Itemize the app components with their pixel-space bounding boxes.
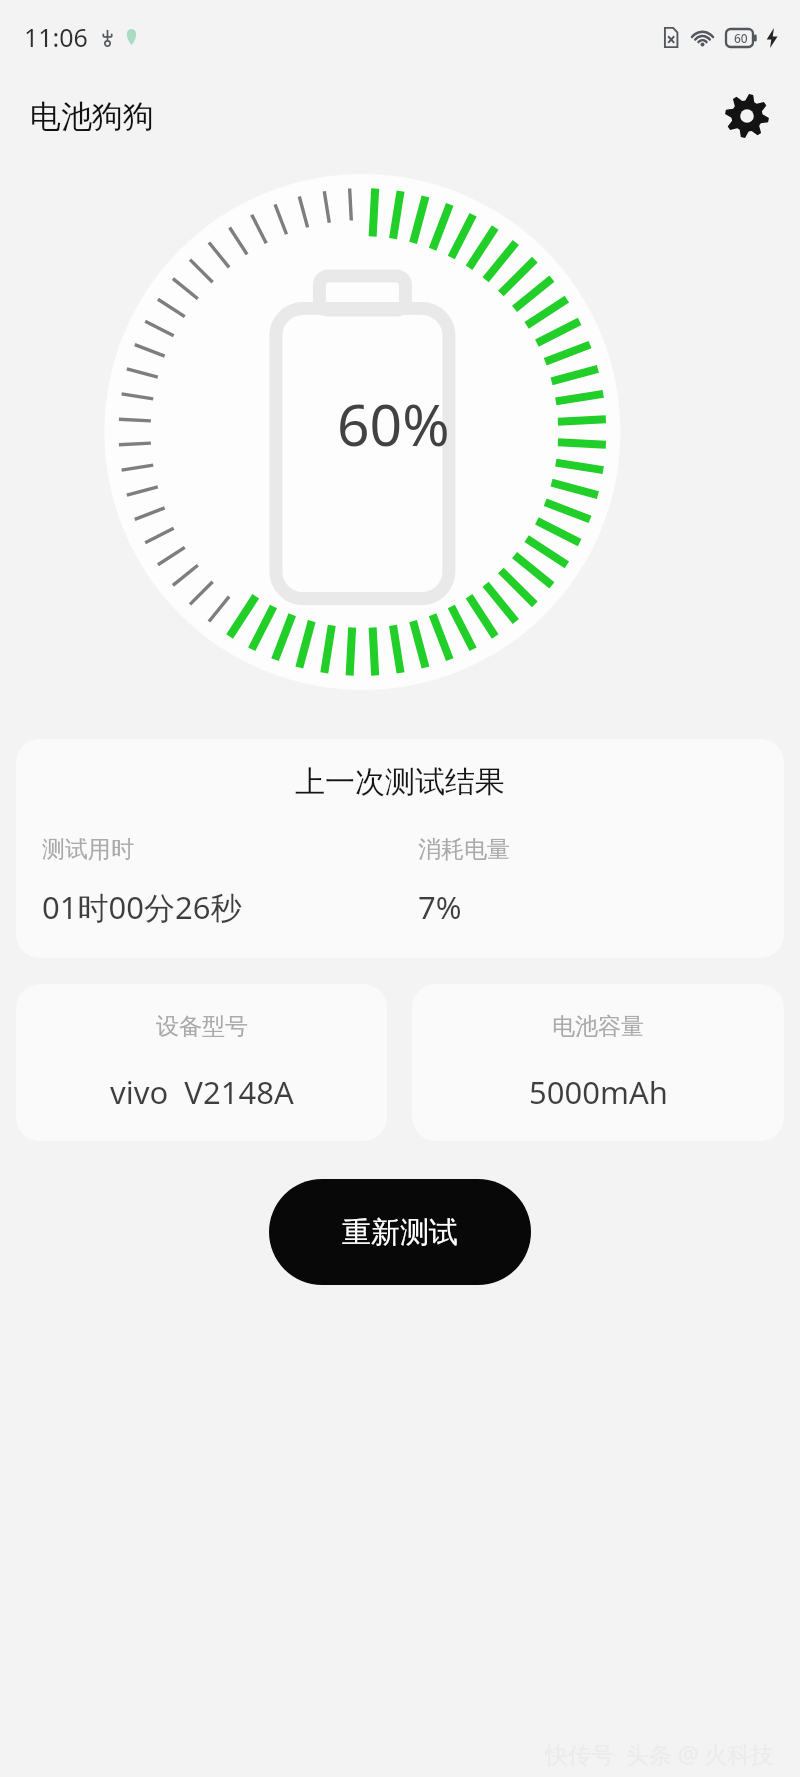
- staticText: 60: [734, 30, 748, 46]
- button[interactable]: Settings: [718, 87, 776, 145]
- staticText: vivo V2148A: [110, 1071, 294, 1113]
- staticText: 01时00分26秒: [42, 886, 242, 928]
- staticText: 上一次测试结果: [295, 763, 505, 801]
- button[interactable]: 重新测试: [269, 1179, 531, 1285]
- button[interactable]: 设备型号: [16, 984, 387, 1141]
- staticText: 7%: [418, 886, 462, 928]
- staticText: 电池容量: [552, 1012, 644, 1041]
- staticText: 60%: [337, 385, 450, 463]
- staticText: 5000mAh: [529, 1071, 668, 1113]
- staticText: 设备型号: [156, 1012, 248, 1041]
- staticText: 11:06: [24, 20, 88, 54]
- staticText: 消耗电量: [418, 835, 510, 864]
- staticText: 测试用时: [42, 835, 134, 864]
- button[interactable]: 电池容量: [412, 984, 784, 1141]
- button[interactable]: 上一次测试结果: [16, 739, 784, 958]
- staticText: 电池狗狗: [30, 97, 154, 136]
- staticText: 重新测试: [342, 1214, 458, 1251]
